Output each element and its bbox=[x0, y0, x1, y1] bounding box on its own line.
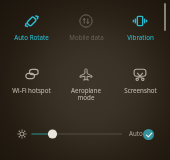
button[interactable]: Auto Rotate bbox=[4, 1, 59, 49]
staticText: Auto Rotate bbox=[14, 33, 49, 41]
button[interactable]: Brightness slider bbox=[30, 128, 123, 140]
button[interactable]: Brightness bbox=[17, 129, 27, 139]
staticText: Wi-Fi hotspot bbox=[12, 86, 51, 94]
button[interactable]: Screenshot bbox=[113, 54, 167, 102]
staticText: Aeroplane mode bbox=[71, 86, 101, 101]
button[interactable]: Vibration bbox=[113, 1, 167, 49]
staticText: Screenshot bbox=[124, 86, 157, 94]
staticText: Mobile data bbox=[69, 33, 104, 41]
staticText: Auto bbox=[129, 129, 143, 137]
button[interactable]: Mobile data bbox=[59, 1, 113, 49]
button[interactable]: Aeroplane mode bbox=[59, 54, 113, 102]
staticText: Vibration bbox=[127, 33, 154, 41]
button[interactable]: Wi-Fi hotspot bbox=[4, 54, 59, 102]
button[interactable]: Auto brightness bbox=[143, 129, 154, 140]
